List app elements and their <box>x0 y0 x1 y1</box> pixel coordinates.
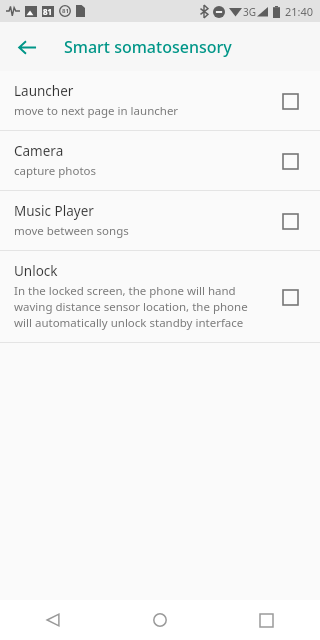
staticText: Smart somatosensory <box>64 36 232 58</box>
button[interactable]: Back <box>8 28 46 66</box>
button[interactable]: Back <box>0 600 106 640</box>
staticText: capture photos <box>14 163 97 179</box>
staticText: move between songs <box>14 223 129 239</box>
staticText: Unlock <box>14 262 58 280</box>
staticText: waving distance sensor location, the pho… <box>14 299 248 315</box>
staticText: move to next page in launcher <box>14 103 179 119</box>
button[interactable]: Music Player <box>0 191 320 250</box>
button[interactable]: Toggle Camera <box>274 145 306 177</box>
staticText: will automatically unlock standby interf… <box>14 315 244 331</box>
button[interactable]: Toggle Launcher <box>274 85 306 117</box>
staticText: Launcher <box>14 82 74 100</box>
button[interactable]: Toggle Unlock <box>274 281 306 313</box>
button[interactable]: Toggle Music Player <box>274 205 306 237</box>
button[interactable]: Camera <box>0 131 320 190</box>
button[interactable]: Home <box>106 600 213 640</box>
staticText: In the locked screen, the phone will han… <box>14 283 236 299</box>
staticText: 81 <box>62 7 69 15</box>
staticText: 81 <box>43 6 53 17</box>
button[interactable]: Unlock <box>0 251 320 342</box>
staticText: Music Player <box>14 202 94 220</box>
staticText: 3G <box>243 5 256 19</box>
staticText: Camera <box>14 142 64 160</box>
button[interactable]: Launcher <box>0 71 320 130</box>
staticText: 21:40 <box>285 4 314 19</box>
button[interactable]: Recents <box>213 600 320 640</box>
